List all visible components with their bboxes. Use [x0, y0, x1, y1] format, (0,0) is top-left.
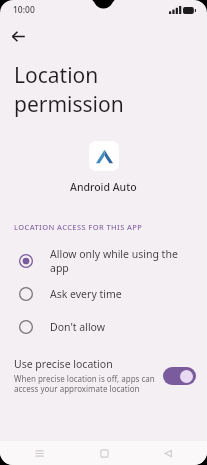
button[interactable]: Back — [5, 23, 32, 50]
staticText: Android Auto — [70, 180, 137, 194]
button[interactable]: Recent apps — [22, 441, 56, 465]
staticText: permission — [14, 90, 124, 119]
button[interactable]: Allow only while using the app — [0, 244, 207, 277]
button[interactable]: Use precise location toggle — [163, 367, 196, 385]
staticText: When precise location is off, apps can a… — [14, 373, 155, 395]
button[interactable]: Don't allow — [0, 310, 207, 343]
button[interactable]: Back — [151, 441, 185, 465]
staticText: LOCATION ACCESS FOR THIS APP — [14, 222, 143, 232]
staticText: Ask every time — [50, 287, 122, 301]
button[interactable]: Use precise location — [0, 351, 207, 401]
staticText: Allow only while using the app — [50, 247, 193, 275]
staticText: Location — [14, 61, 99, 90]
staticText: Don't allow — [50, 320, 105, 334]
button[interactable]: Home — [87, 441, 121, 465]
button[interactable]: Ask every time — [0, 277, 207, 310]
staticText: Use precise location — [14, 357, 113, 371]
staticText: 10:00 — [13, 4, 35, 16]
